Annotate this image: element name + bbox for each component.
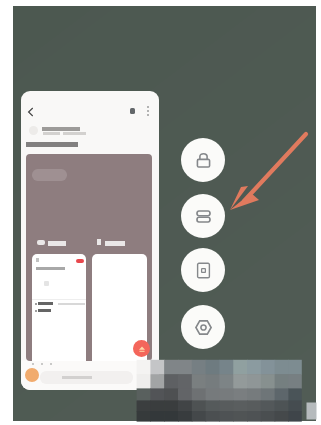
button[interactable]: Split screen <box>181 194 225 238</box>
button[interactable]: Lock <box>181 138 225 182</box>
button[interactable]: Settings <box>181 305 225 349</box>
button[interactable]: Picture in picture <box>181 248 225 292</box>
button[interactable]: Compose <box>133 340 150 357</box>
